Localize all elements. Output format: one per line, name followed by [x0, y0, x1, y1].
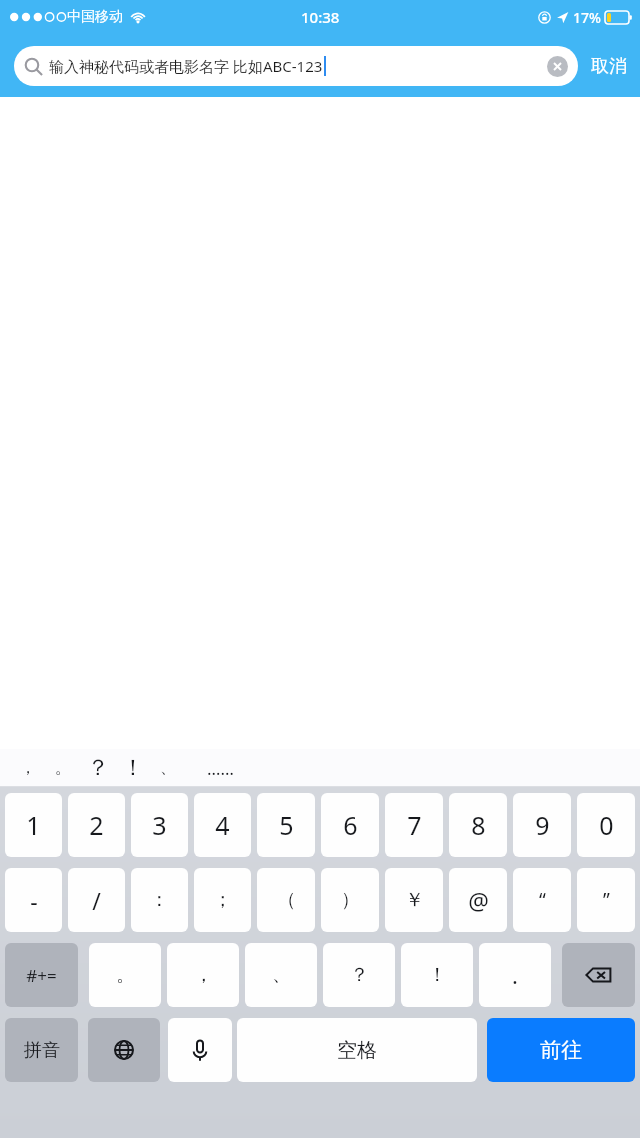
staticText: 3	[152, 808, 167, 842]
button[interactable]: 输入神秘代码或者电影名字 比如ABC-123	[14, 46, 578, 86]
button[interactable]: 1	[5, 793, 62, 857]
button[interactable]: @	[449, 868, 507, 932]
button[interactable]: ；	[194, 868, 251, 932]
button[interactable]: Switch keyboard	[88, 1018, 160, 1082]
button[interactable]: -	[5, 868, 62, 932]
staticText: 10:38	[301, 7, 340, 27]
staticText: @	[468, 885, 489, 916]
staticText: -	[30, 885, 38, 916]
button[interactable]: ，	[167, 943, 239, 1007]
button[interactable]: ……	[185, 749, 255, 787]
staticText: 0	[599, 808, 614, 842]
button[interactable]: 0	[577, 793, 635, 857]
staticText: 5	[279, 808, 294, 842]
button[interactable]: 、	[150, 749, 185, 787]
staticText: #+=	[26, 964, 57, 987]
staticText: ）	[341, 888, 360, 912]
button[interactable]: 。	[89, 943, 161, 1007]
button[interactable]: 。	[45, 749, 80, 787]
button[interactable]: 2	[68, 793, 125, 857]
staticText: 拼音	[24, 1039, 60, 1062]
button[interactable]: 6	[321, 793, 379, 857]
staticText: ；	[213, 888, 232, 912]
staticText: ！	[122, 754, 144, 782]
button[interactable]: “	[513, 868, 571, 932]
button[interactable]: /	[68, 868, 125, 932]
staticText: 取消	[591, 55, 627, 78]
staticText: 空格	[337, 1038, 377, 1063]
button[interactable]: ￥	[385, 868, 443, 932]
button[interactable]: 7	[385, 793, 443, 857]
button[interactable]: ？	[80, 749, 115, 787]
button[interactable]: 取消	[578, 44, 640, 88]
button[interactable]: ！	[115, 749, 150, 787]
staticText: 中国移动	[67, 8, 123, 26]
staticText: 。	[55, 758, 71, 778]
staticText: 17%	[573, 8, 601, 27]
button[interactable]: ：	[131, 868, 188, 932]
staticText: ”	[603, 887, 610, 913]
staticText: 前往	[540, 1037, 582, 1063]
staticText: 。	[116, 963, 135, 987]
staticText: 6	[343, 808, 358, 842]
button[interactable]: 前往	[487, 1018, 635, 1082]
staticText: ！	[428, 963, 447, 987]
button[interactable]: （	[257, 868, 315, 932]
button[interactable]: Backspace	[562, 943, 635, 1007]
button[interactable]: ）	[321, 868, 379, 932]
staticText: 、	[160, 758, 176, 778]
staticText: 1	[26, 808, 41, 842]
staticText: 输入神秘代码或者电影名字 比如ABC-123	[49, 56, 323, 76]
button[interactable]: 3	[131, 793, 188, 857]
button[interactable]: 拼音	[5, 1018, 78, 1082]
button[interactable]: ？	[323, 943, 395, 1007]
button[interactable]: ”	[577, 868, 635, 932]
staticText: ，	[194, 963, 213, 987]
staticText: 4	[215, 808, 230, 842]
button[interactable]: .	[479, 943, 551, 1007]
button[interactable]: 4	[194, 793, 251, 857]
staticText: ￥	[405, 888, 424, 912]
staticText: /	[92, 885, 101, 916]
staticText: 2	[89, 808, 104, 842]
button[interactable]: 9	[513, 793, 571, 857]
staticText: 9	[535, 808, 550, 842]
staticText: .	[512, 960, 518, 990]
staticText: 7	[407, 808, 422, 842]
button[interactable]: 空格	[237, 1018, 477, 1082]
staticText: ，	[20, 758, 36, 778]
staticText: “	[539, 887, 546, 913]
button[interactable]: Voice input	[168, 1018, 232, 1082]
staticText: 8	[471, 808, 486, 842]
staticText: 、	[272, 963, 291, 987]
staticText: （	[277, 888, 296, 912]
button[interactable]: ，	[10, 749, 45, 787]
button[interactable]: 、	[245, 943, 317, 1007]
button[interactable]: ！	[401, 943, 473, 1007]
button[interactable]: Clear text	[547, 56, 568, 77]
button[interactable]: 5	[257, 793, 315, 857]
staticText: ……	[207, 757, 234, 780]
staticText: ：	[150, 888, 169, 912]
staticText: ？	[350, 963, 369, 987]
button[interactable]: 8	[449, 793, 507, 857]
staticText: ？	[87, 754, 109, 782]
button[interactable]: #+=	[5, 943, 78, 1007]
